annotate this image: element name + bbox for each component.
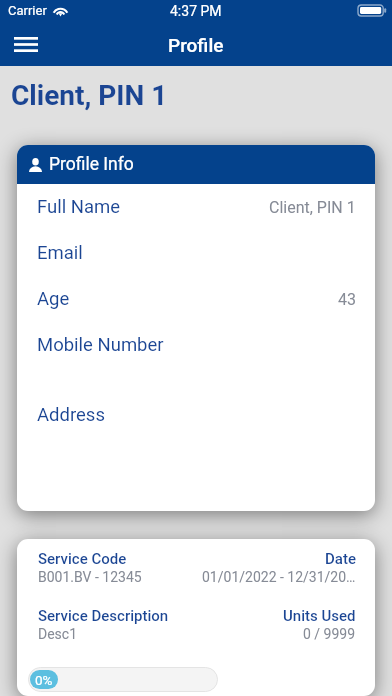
button[interactable]: Open navigation menu <box>2 22 50 66</box>
staticText: Full Name <box>37 196 121 218</box>
staticText: B001.BV - 12345 <box>38 569 142 585</box>
button[interactable]: Service Code <box>17 539 375 696</box>
staticText: 43 <box>338 290 356 309</box>
staticText: 01/01/2022 - 12/31/20… <box>202 569 356 585</box>
staticText: 0 / 9999 <box>303 626 356 642</box>
staticText: Age <box>37 288 70 310</box>
staticText: Address <box>37 404 105 426</box>
staticText: Profile <box>168 34 224 56</box>
button[interactable]: Age <box>17 276 375 322</box>
button[interactable]: Email <box>17 230 375 276</box>
staticText: Mobile Number <box>37 334 164 356</box>
button[interactable]: Full Name <box>17 184 375 230</box>
staticText: Profile Info <box>49 154 134 175</box>
staticText: Desc1 <box>38 626 78 642</box>
staticText: Service Code <box>38 550 127 568</box>
staticText: 4:37 PM <box>170 3 222 19</box>
staticText: Date <box>325 550 356 568</box>
staticText: Client, PIN 1 <box>269 198 356 217</box>
staticText: Service Description <box>38 607 169 625</box>
staticText: Carrier <box>8 3 47 18</box>
button[interactable]: Address <box>17 392 375 438</box>
staticText: Email <box>37 242 83 264</box>
staticText: Units Used <box>283 607 356 625</box>
button[interactable]: Mobile Number <box>17 322 375 368</box>
button[interactable]: Profile Info <box>17 145 375 184</box>
button[interactable]: 0% <box>28 667 218 692</box>
staticText: Client, PIN 1 <box>11 79 168 112</box>
staticText: 0% <box>35 672 53 688</box>
